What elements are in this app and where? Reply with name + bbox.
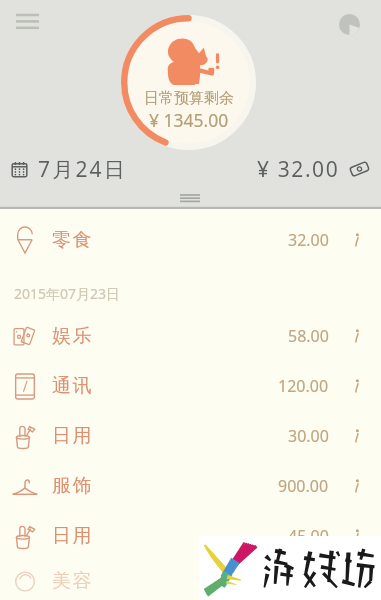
button[interactable]: 娱乐 <box>0 311 381 361</box>
button[interactable]: Statistics <box>334 9 365 40</box>
staticText: 美容 <box>52 569 94 593</box>
staticText: 2015年07月23日 <box>14 284 121 303</box>
button[interactable]: Menu <box>8 6 46 38</box>
staticText: 日用 <box>52 424 94 448</box>
staticText: 服饰 <box>52 474 94 498</box>
staticText: 日常预算剩余 <box>144 89 234 108</box>
staticText: ¥ 32.00 <box>257 155 340 184</box>
button[interactable]: 日用 <box>0 411 381 461</box>
staticText: 60.00 <box>288 570 329 592</box>
button[interactable]: 通讯 <box>0 361 381 411</box>
staticText: ¥ 1345.00 <box>149 108 229 132</box>
staticText: 32.00 <box>288 229 329 251</box>
button[interactable]: 零食 <box>0 215 381 265</box>
staticText: 娱乐 <box>52 324 94 348</box>
staticText: 900.00 <box>278 475 329 497</box>
staticText: 通讯 <box>52 374 94 398</box>
staticText: 45.00 <box>288 525 329 547</box>
button[interactable]: Daily budget <box>121 15 256 150</box>
staticText: 零食 <box>52 228 94 252</box>
staticText: 7月24日 <box>38 155 128 184</box>
staticText: 日用 <box>52 524 94 548</box>
staticText: 58.00 <box>288 325 329 347</box>
button[interactable]: 美容 <box>0 561 381 600</box>
staticText: 120.00 <box>278 375 329 397</box>
staticText: 30.00 <box>288 425 329 447</box>
button[interactable]: 日用 <box>0 511 381 561</box>
button[interactable]: 服饰 <box>0 461 381 511</box>
